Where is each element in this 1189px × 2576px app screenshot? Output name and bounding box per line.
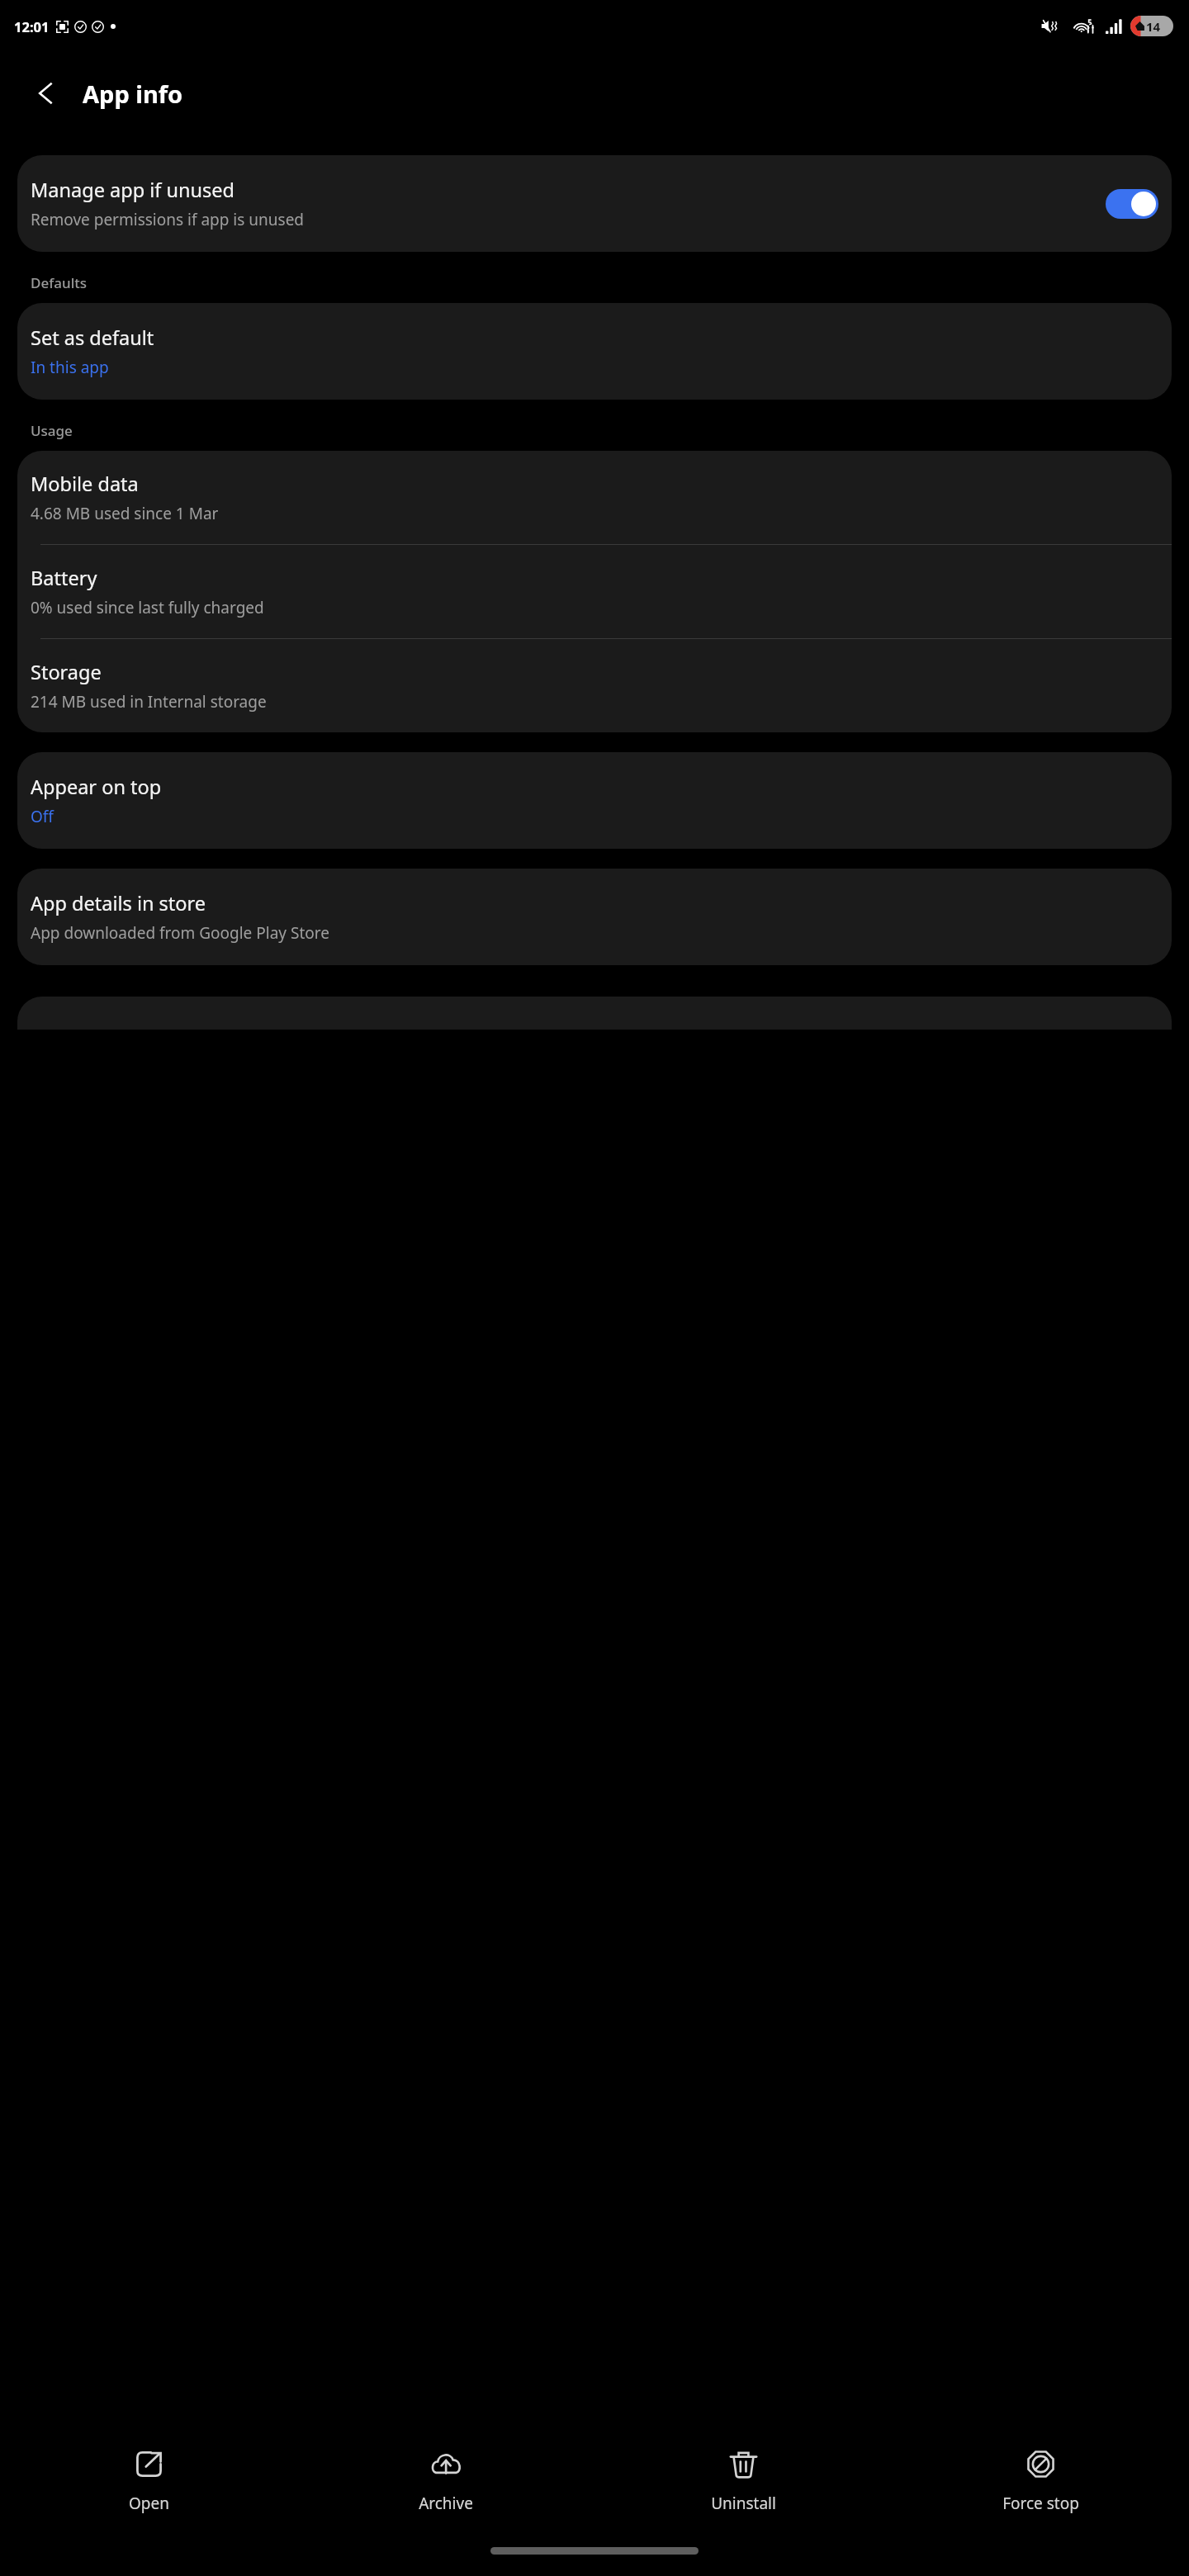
staticText: 214 MB used in Internal storage: [31, 691, 267, 713]
button[interactable]: Set as default: [17, 303, 1172, 400]
staticText: 14: [1146, 18, 1161, 35]
staticText: App info: [83, 78, 183, 110]
staticText: 4.68 MB used since 1 Mar: [31, 503, 219, 524]
button[interactable]: [1106, 189, 1158, 219]
staticText: App details in store: [31, 890, 206, 916]
staticText: Set as default: [31, 324, 154, 351]
staticText: Uninstall: [711, 2493, 776, 2514]
staticText: Storage: [31, 659, 102, 685]
staticText: Defaults: [31, 273, 87, 292]
button[interactable]: Storage: [17, 639, 1172, 732]
staticText: Battery: [31, 565, 97, 591]
button[interactable]: Uninstall: [594, 2441, 892, 2522]
staticText: 12:01: [14, 17, 50, 36]
button[interactable]: Battery: [17, 545, 1172, 638]
staticText: Off: [31, 806, 54, 827]
button[interactable]: Manage app if unused: [17, 155, 1172, 252]
button[interactable]: App details in store: [17, 869, 1172, 965]
button[interactable]: Archive: [297, 2441, 594, 2522]
staticText: App downloaded from Google Play Store: [31, 922, 329, 944]
button[interactable]: Mobile data: [17, 451, 1172, 544]
staticText: In this app: [31, 357, 109, 378]
button[interactable]: Back: [21, 69, 71, 118]
staticText: 0% used since last fully charged: [31, 597, 264, 618]
staticText: Mobile data: [31, 471, 139, 497]
staticText: Usage: [31, 421, 73, 440]
staticText: Remove permissions if app is unused: [31, 209, 305, 230]
button[interactable]: Force stop: [892, 2441, 1189, 2522]
staticText: Open: [129, 2493, 169, 2514]
staticText: Force stop: [1002, 2493, 1079, 2514]
staticText: Archive: [419, 2493, 473, 2514]
button[interactable]: Open: [0, 2441, 297, 2522]
staticText: Manage app if unused: [31, 177, 235, 203]
button[interactable]: Appear on top: [17, 752, 1172, 849]
staticText: Appear on top: [31, 774, 162, 800]
